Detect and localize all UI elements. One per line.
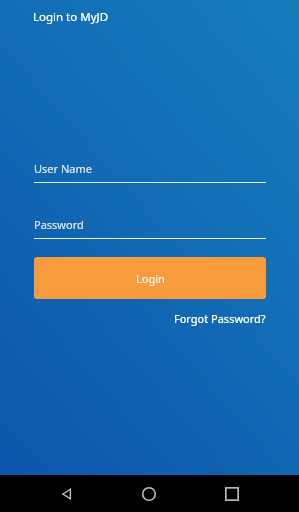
button[interactable]: Forgot Password?	[158, 308, 266, 328]
staticText: User Name	[34, 161, 92, 176]
button[interactable]: User Name	[34, 161, 266, 183]
staticText: Password	[34, 217, 84, 232]
staticText: Forgot Password?	[174, 311, 266, 326]
button[interactable]: Login	[34, 257, 266, 299]
button[interactable]: Back	[52, 475, 82, 512]
button[interactable]: Home	[134, 475, 164, 512]
button[interactable]: Password	[34, 217, 266, 239]
staticText: Login to MyJD	[33, 9, 109, 25]
button[interactable]: Recent apps	[217, 475, 247, 512]
staticText: Login	[136, 271, 165, 286]
